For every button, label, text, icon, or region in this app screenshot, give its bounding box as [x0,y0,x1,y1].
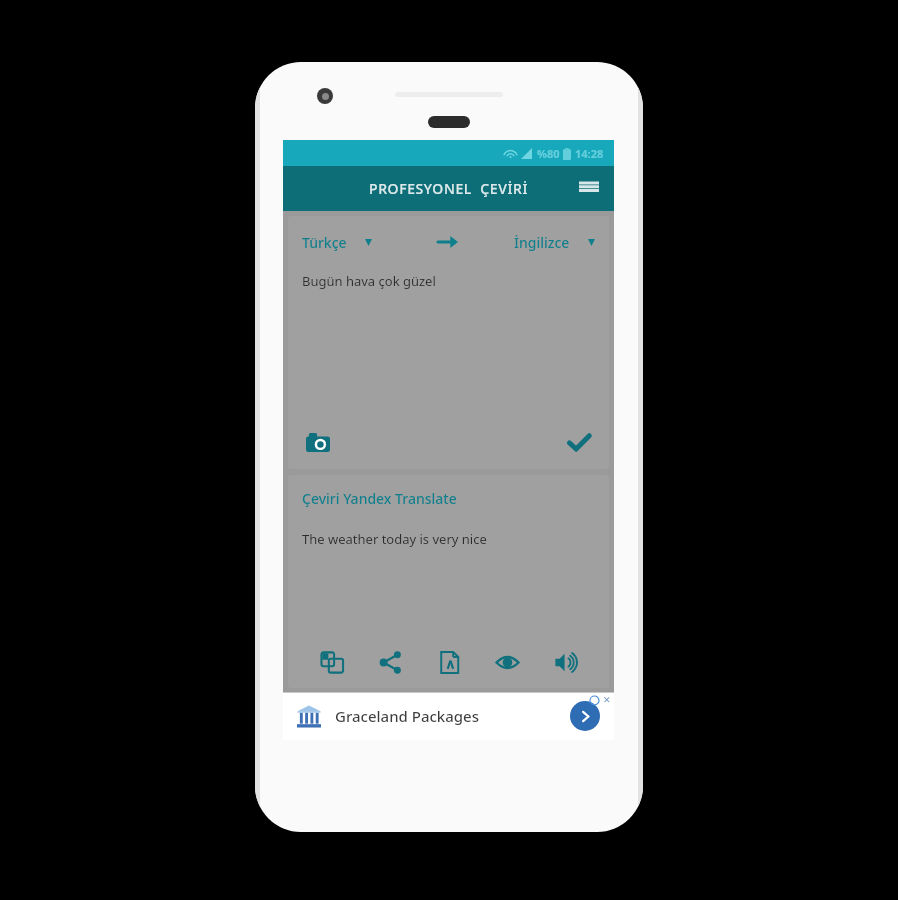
staticText: Graceland Packages [335,706,480,726]
button[interactable]: Export PDF [427,640,471,684]
staticText: PROFESYONEL ÇEVİRİ [369,179,529,198]
button[interactable]: Copy [310,640,354,684]
button[interactable]: Speak [543,640,587,684]
button[interactable]: Share [368,640,412,684]
staticText: İngilizce [514,233,570,252]
button[interactable]: Confirm [559,422,599,462]
staticText: 14:28 [575,146,604,161]
staticText: %80 [537,146,560,161]
button[interactable]: Camera [298,422,338,462]
staticText: ✕ [603,695,611,705]
staticText: Bugün hava çok güzel [302,272,436,290]
button[interactable]: Graceland Packages [283,692,614,740]
staticText: Çeviri Yandex Translate [302,489,457,508]
button[interactable]: Menu [572,172,606,206]
staticText: The weather today is very nice [302,530,487,548]
button[interactable]: Swap languages [431,225,465,259]
button[interactable]: İngilizce [465,216,595,268]
button[interactable]: Türkçe [302,216,431,268]
button[interactable]: Open ad [570,701,600,731]
button[interactable]: Preview [485,640,529,684]
staticText: Türkçe [302,233,347,252]
